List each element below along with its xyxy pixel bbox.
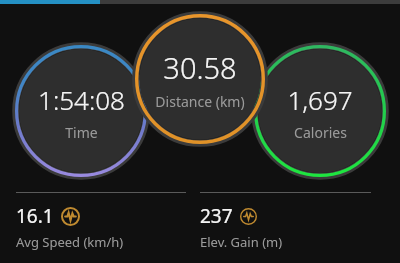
staticText: Avg Speed (km/h) <box>16 233 124 251</box>
staticText: Calories <box>294 123 347 142</box>
staticText: Distance (km) <box>155 92 245 111</box>
staticText: Elev. Gain (m) <box>200 233 283 251</box>
staticText: Time <box>65 123 98 142</box>
button[interactable]: 30.58 <box>134 13 266 145</box>
button[interactable]: 1,697 <box>253 44 387 178</box>
button[interactable]: 16.1 <box>16 192 200 251</box>
staticText: 16.1 <box>16 203 54 229</box>
button[interactable]: 237 <box>200 192 385 251</box>
other: Sensor source <box>240 208 257 225</box>
staticText: 237 <box>200 203 233 229</box>
staticText: 1,697 <box>287 82 353 117</box>
staticText: 1:54:08 <box>38 82 125 117</box>
staticText: 30.58 <box>163 48 237 87</box>
button[interactable]: 1:54:08 <box>14 44 148 178</box>
other: Sensor source <box>61 207 80 226</box>
